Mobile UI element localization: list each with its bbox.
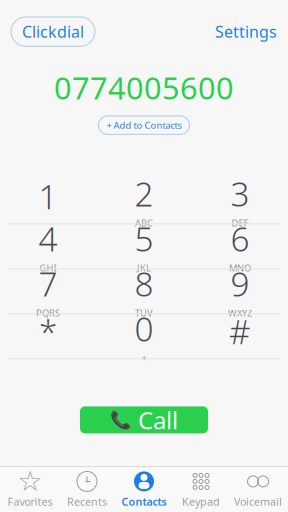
button[interactable]: 1: [0, 179, 96, 223]
button[interactable]: 6: [192, 224, 288, 268]
button[interactable]: 8: [96, 269, 192, 313]
staticText: #: [229, 309, 251, 353]
staticText: ☆: [17, 465, 42, 497]
button[interactable]: 3: [192, 179, 288, 223]
button[interactable]: Settings: [215, 21, 277, 42]
staticText: Recents: [67, 494, 107, 509]
staticText: 5: [134, 216, 153, 261]
staticText: 2: [134, 171, 153, 216]
button[interactable]: 5: [96, 224, 192, 268]
staticText: +: [141, 352, 146, 364]
button[interactable]: #: [192, 314, 288, 358]
staticText: MNO: [229, 262, 251, 274]
staticText: *: [39, 309, 57, 353]
button[interactable]: 2: [96, 179, 192, 223]
button[interactable]: 4: [0, 224, 96, 268]
staticText: GHI: [39, 262, 56, 274]
staticText: + Add to Contacts: [106, 119, 181, 131]
staticText: 9: [230, 261, 249, 306]
button[interactable]: Contacts: [115, 467, 172, 511]
staticText: PQRS: [36, 307, 60, 319]
button[interactable]: ★: [1, 467, 58, 511]
staticText: 3: [230, 171, 249, 216]
button[interactable]: 📞: [80, 406, 208, 433]
button[interactable]: 7: [0, 269, 96, 313]
staticText: 0: [134, 306, 153, 351]
button[interactable]: *: [0, 314, 96, 358]
button[interactable]: Keypad: [172, 467, 229, 511]
staticText: Keypad: [182, 494, 220, 509]
staticText: 📞: [110, 410, 132, 430]
staticText: 7: [38, 261, 57, 306]
staticText: Clickdial: [22, 21, 84, 42]
staticText: 4: [38, 216, 57, 261]
staticText: Favorites: [7, 494, 52, 509]
staticText: TUV: [135, 307, 153, 319]
staticText: 6: [230, 216, 249, 261]
staticText: Voicemail: [234, 494, 282, 509]
staticText: 1: [38, 174, 57, 218]
staticText: Settings: [215, 21, 277, 42]
staticText: 0774005600: [54, 67, 234, 108]
staticText: WXYZ: [228, 307, 252, 319]
staticText: JKL: [137, 262, 151, 274]
staticText: ★: [17, 465, 42, 497]
button[interactable]: 9: [192, 269, 288, 313]
staticText: Call: [138, 404, 178, 436]
button[interactable]: Clickdial: [11, 17, 95, 46]
button[interactable]: Recents: [58, 467, 115, 511]
staticText: 8: [134, 261, 153, 306]
staticText: DEF: [231, 217, 248, 229]
button[interactable]: 0: [96, 314, 192, 358]
button[interactable]: + Add to Contacts: [98, 116, 189, 134]
staticText: Contacts: [121, 494, 166, 509]
button[interactable]: Voicemail: [229, 467, 286, 511]
staticText: ABC: [135, 217, 153, 229]
